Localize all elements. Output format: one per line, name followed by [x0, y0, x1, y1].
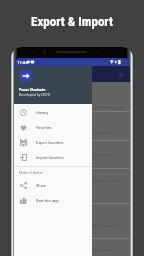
button[interactable]: Favorites	[14, 120, 92, 135]
staticText: Power Shortcuts	[19, 88, 46, 92]
button[interactable]: shortcuts on your device.	[73, 130, 117, 135]
staticText: History	[36, 110, 49, 115]
button[interactable]: App icon	[19, 69, 33, 83]
staticText: 11:04	[17, 60, 28, 65]
staticText: Favorites	[36, 125, 52, 130]
staticText: Developed by DSYK	[19, 93, 51, 97]
staticText: Rate this app	[36, 198, 59, 203]
button[interactable]: Import favorites	[14, 150, 92, 165]
button[interactable]: Share	[14, 178, 92, 193]
button[interactable]: play, pause, power	[81, 247, 113, 252]
staticText: Share	[36, 183, 46, 188]
button[interactable]: actions like photo, music	[76, 178, 119, 183]
button[interactable]: Export favorites	[14, 135, 92, 150]
button[interactable]: Favorites	[115, 69, 126, 80]
button[interactable]: Rate this app	[14, 193, 92, 208]
button[interactable]: History	[14, 105, 92, 120]
button[interactable]: torch light, screen lock	[81, 223, 120, 228]
staticText: Import favorites	[36, 155, 64, 160]
button[interactable]: Tap to start launching ap	[81, 105, 124, 110]
button[interactable]: You can make your own	[74, 152, 116, 157]
staticText: Export favorites	[36, 140, 64, 145]
staticText: Export & Import	[31, 14, 113, 29]
staticText: Make it better	[19, 170, 43, 175]
